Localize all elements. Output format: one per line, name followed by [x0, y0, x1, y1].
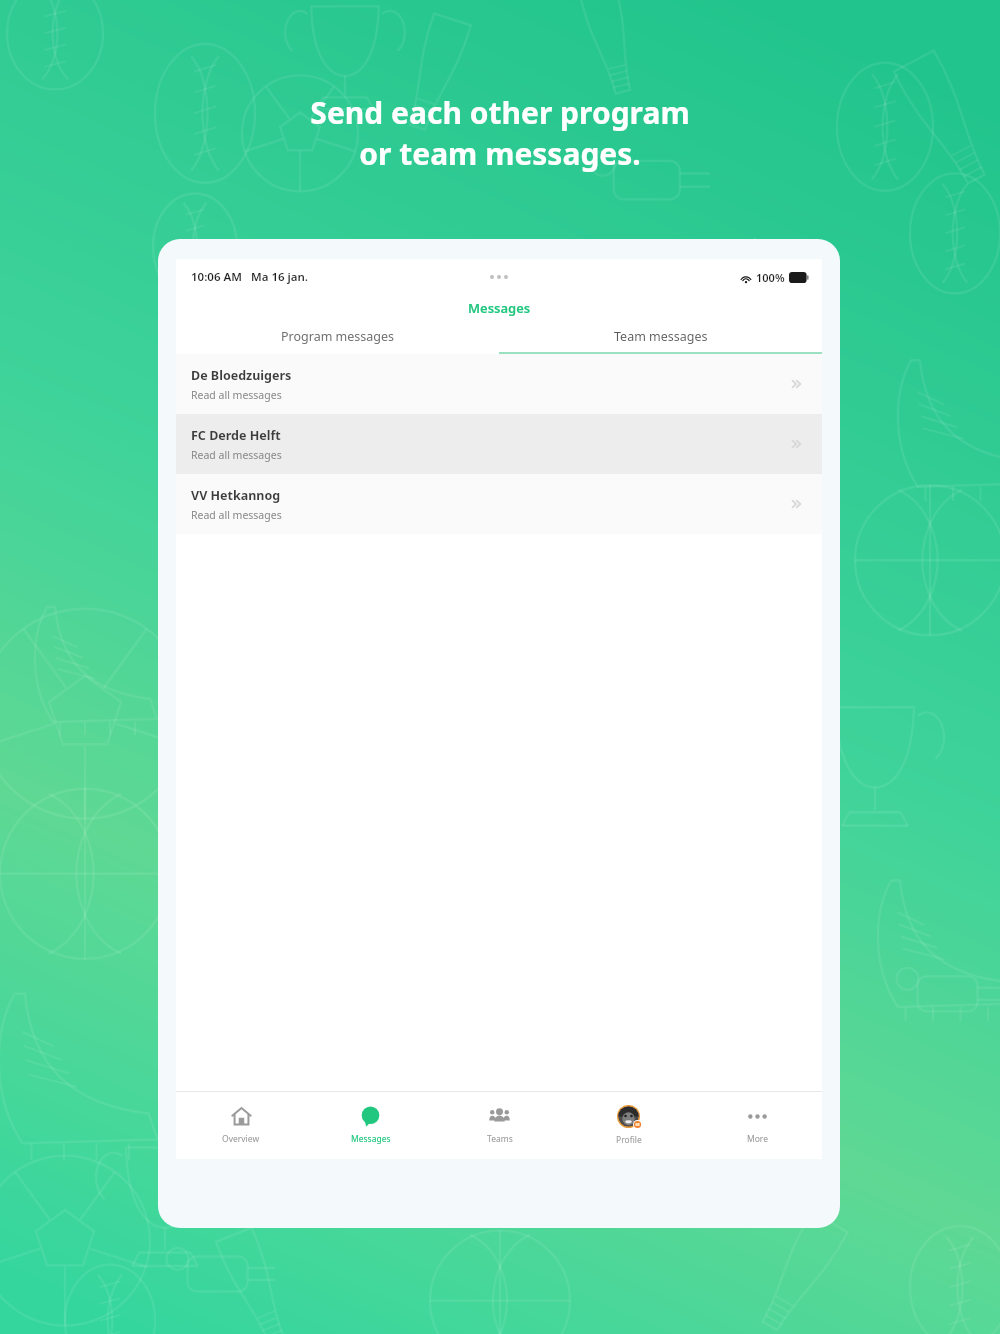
- staticText: 100%: [756, 270, 785, 285]
- button[interactable]: Messages: [306, 1092, 435, 1159]
- staticText: Profile: [616, 1134, 642, 1146]
- staticText: VV Hetkannog: [191, 487, 281, 504]
- staticText: FC Derde Helft: [191, 427, 281, 444]
- button[interactable]: Profile: [564, 1092, 693, 1159]
- button[interactable]: Teams: [435, 1092, 564, 1159]
- staticText: Program messages: [281, 328, 395, 345]
- staticText: Read all messages: [191, 448, 282, 462]
- button[interactable]: Team messages: [499, 321, 822, 352]
- staticText: Read all messages: [191, 388, 282, 402]
- button[interactable]: VV Hetkannog: [176, 474, 822, 534]
- staticText: Messages: [351, 1133, 391, 1145]
- staticText: Overview: [222, 1133, 260, 1145]
- button[interactable]: Overview: [176, 1092, 306, 1159]
- button[interactable]: FC Derde Helft: [176, 414, 822, 474]
- button[interactable]: De Bloedzuigers: [176, 354, 822, 414]
- button[interactable]: More: [693, 1092, 822, 1159]
- staticText: Teams: [487, 1133, 513, 1145]
- staticText: Send each other program: [310, 92, 690, 133]
- staticText: Messages: [468, 299, 531, 317]
- staticText: Read all messages: [191, 508, 282, 522]
- button[interactable]: Program messages: [176, 321, 499, 352]
- staticText: Team messages: [614, 328, 708, 345]
- staticText: 10:06 AM: [191, 269, 242, 285]
- staticText: Ma 16 jan.: [251, 269, 309, 285]
- staticText: De Bloedzuigers: [191, 367, 292, 384]
- staticText: More: [747, 1133, 768, 1145]
- staticText: or team messages.: [359, 133, 641, 174]
